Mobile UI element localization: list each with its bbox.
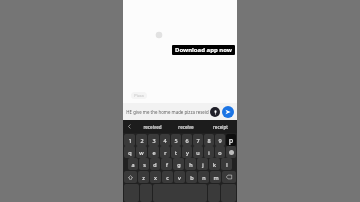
- staticText: 7: [196, 137, 200, 144]
- button[interactable]: x: [150, 171, 161, 183]
- button[interactable]: t: [171, 146, 181, 158]
- staticText: Pizza: [134, 93, 144, 98]
- staticText: i: [208, 149, 210, 156]
- button[interactable]: f: [161, 158, 172, 170]
- button[interactable]: e: [148, 146, 159, 158]
- button[interactable]: y: [182, 146, 192, 158]
- staticText: 2: [140, 137, 144, 144]
- button[interactable]: received: [135, 120, 169, 133]
- button[interactable]: 9: [215, 134, 225, 146]
- button[interactable]: n: [198, 171, 209, 183]
- button[interactable]: u: [193, 146, 203, 158]
- staticText: 8: [207, 137, 211, 144]
- button[interactable]: p: [226, 134, 236, 146]
- staticText: h: [189, 161, 193, 168]
- button[interactable]: c: [162, 171, 173, 183]
- staticText: e: [152, 149, 156, 156]
- staticText: g: [177, 161, 181, 168]
- button[interactable]: Previous suggestions: [123, 120, 135, 133]
- button[interactable]: 7: [193, 134, 203, 146]
- button[interactable]: Send: [222, 106, 234, 118]
- staticText: 6: [185, 137, 189, 144]
- button[interactable]: 6: [182, 134, 192, 146]
- button[interactable]: z: [138, 171, 149, 183]
- button[interactable]: 3: [148, 134, 159, 146]
- staticText: d: [153, 161, 157, 168]
- staticText: 1: [128, 137, 132, 144]
- staticText: 3: [152, 137, 156, 144]
- button[interactable]: Download app now: [172, 45, 235, 55]
- button[interactable]: a: [128, 158, 138, 170]
- button[interactable]: l: [221, 158, 232, 170]
- button[interactable]: m: [210, 171, 221, 183]
- staticText: 4: [163, 137, 167, 144]
- button[interactable]: j: [197, 158, 208, 170]
- button[interactable]: s: [139, 158, 149, 170]
- staticText: 9: [218, 137, 222, 144]
- staticText: z: [142, 174, 145, 181]
- staticText: t: [175, 149, 177, 156]
- button[interactable]: g: [173, 158, 184, 170]
- button[interactable]: 5: [171, 134, 181, 146]
- button[interactable]: h: [185, 158, 196, 170]
- staticText: n: [202, 174, 206, 181]
- button[interactable]: r: [160, 146, 170, 158]
- button[interactable]: Shift: [124, 171, 137, 183]
- staticText: Download app now: [175, 46, 232, 54]
- staticText: 5: [174, 137, 178, 144]
- staticText: y: [186, 149, 189, 156]
- staticText: receipt: [213, 124, 228, 130]
- staticText: HE give me the home made pizza reseid: [126, 109, 209, 115]
- button[interactable]: w: [136, 146, 147, 158]
- button[interactable]: d: [150, 158, 160, 170]
- staticText: a: [131, 161, 135, 168]
- staticText: receive: [178, 124, 194, 130]
- button[interactable]: k: [209, 158, 220, 170]
- staticText: j: [202, 161, 204, 168]
- button[interactable]: Voice message: [210, 107, 220, 117]
- staticText: x: [154, 174, 157, 181]
- button[interactable]: i: [204, 146, 214, 158]
- staticText: q: [128, 149, 132, 156]
- staticText: b: [190, 174, 194, 181]
- staticText: c: [166, 174, 169, 181]
- button[interactable]: 8: [204, 134, 214, 146]
- button[interactable]: receive: [169, 120, 203, 133]
- staticText: p: [229, 136, 233, 145]
- button[interactable]: o: [215, 146, 225, 158]
- staticText: l: [226, 161, 228, 168]
- button[interactable]: 2: [136, 134, 147, 146]
- button[interactable]: q: [124, 146, 135, 158]
- button[interactable]: b: [186, 171, 197, 183]
- staticText: f: [166, 161, 168, 168]
- staticText: o: [218, 149, 222, 156]
- staticText: m: [213, 174, 219, 181]
- staticText: u: [196, 149, 200, 156]
- staticText: r: [164, 149, 167, 156]
- button[interactable]: 1: [124, 134, 135, 146]
- staticText: received: [143, 124, 162, 130]
- staticText: k: [213, 161, 216, 168]
- staticText: v: [178, 174, 181, 181]
- staticText: s: [143, 161, 146, 168]
- staticText: w: [139, 149, 144, 156]
- button[interactable]: Backspace: [222, 171, 236, 183]
- button[interactable]: Change language: [226, 146, 236, 158]
- button[interactable]: HE give me the home made pizza reseid: [126, 109, 210, 115]
- button[interactable]: 4: [160, 134, 170, 146]
- button[interactable]: receipt: [203, 120, 237, 133]
- button[interactable]: v: [174, 171, 185, 183]
